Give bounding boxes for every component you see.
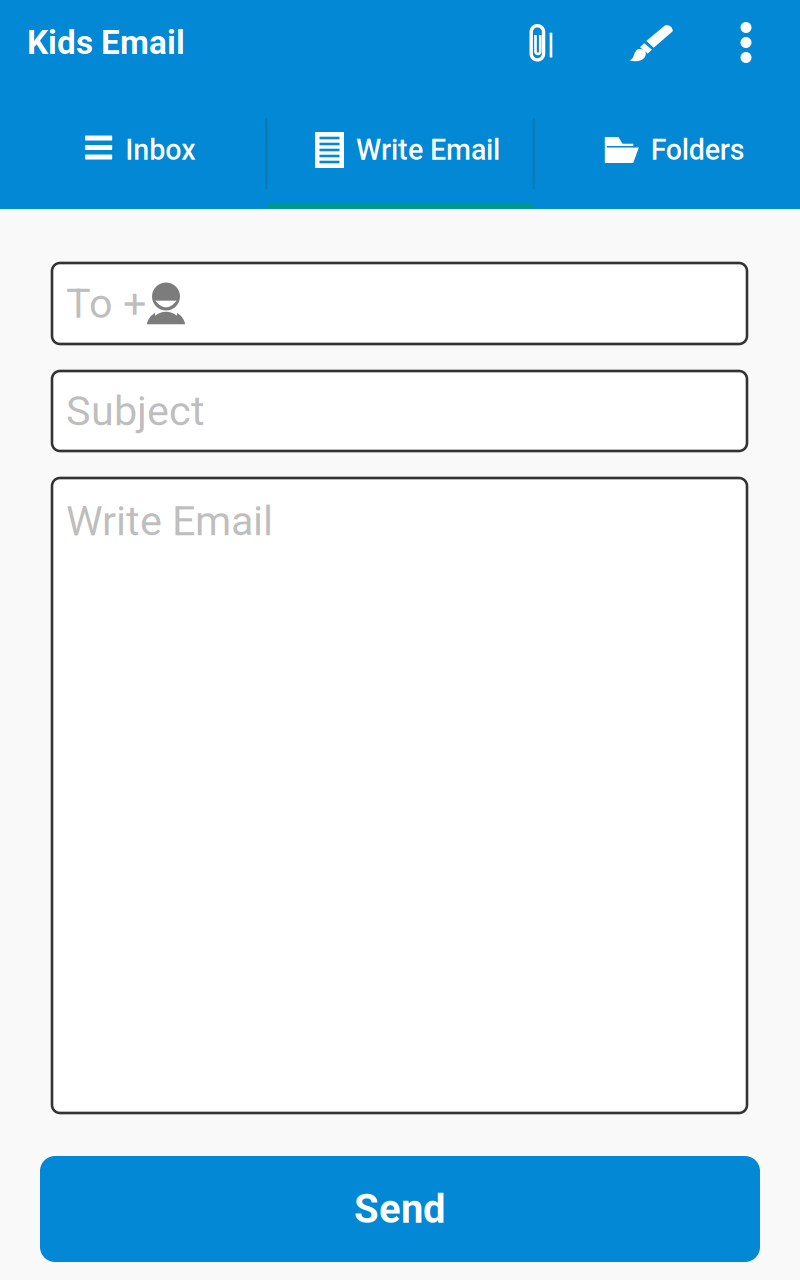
button[interactable]: Attach file [488, 0, 596, 84]
button[interactable]: Drawing tools [596, 0, 706, 84]
staticText: To + [66, 279, 146, 328]
button[interactable]: Inbox [0, 85, 265, 209]
button[interactable]: Write Email [267, 85, 533, 209]
button[interactable]: Folders [535, 85, 800, 209]
button[interactable]: More options [706, 0, 786, 84]
staticText: Folders [651, 133, 745, 167]
staticText: Inbox [125, 133, 195, 167]
button[interactable]: Send [40, 1156, 760, 1262]
staticText: Kids Email [27, 23, 185, 62]
staticText: Write Email [66, 497, 273, 545]
staticText: Subject [66, 387, 205, 435]
staticText: Send [354, 1186, 446, 1232]
staticText: Write Email [356, 133, 500, 167]
